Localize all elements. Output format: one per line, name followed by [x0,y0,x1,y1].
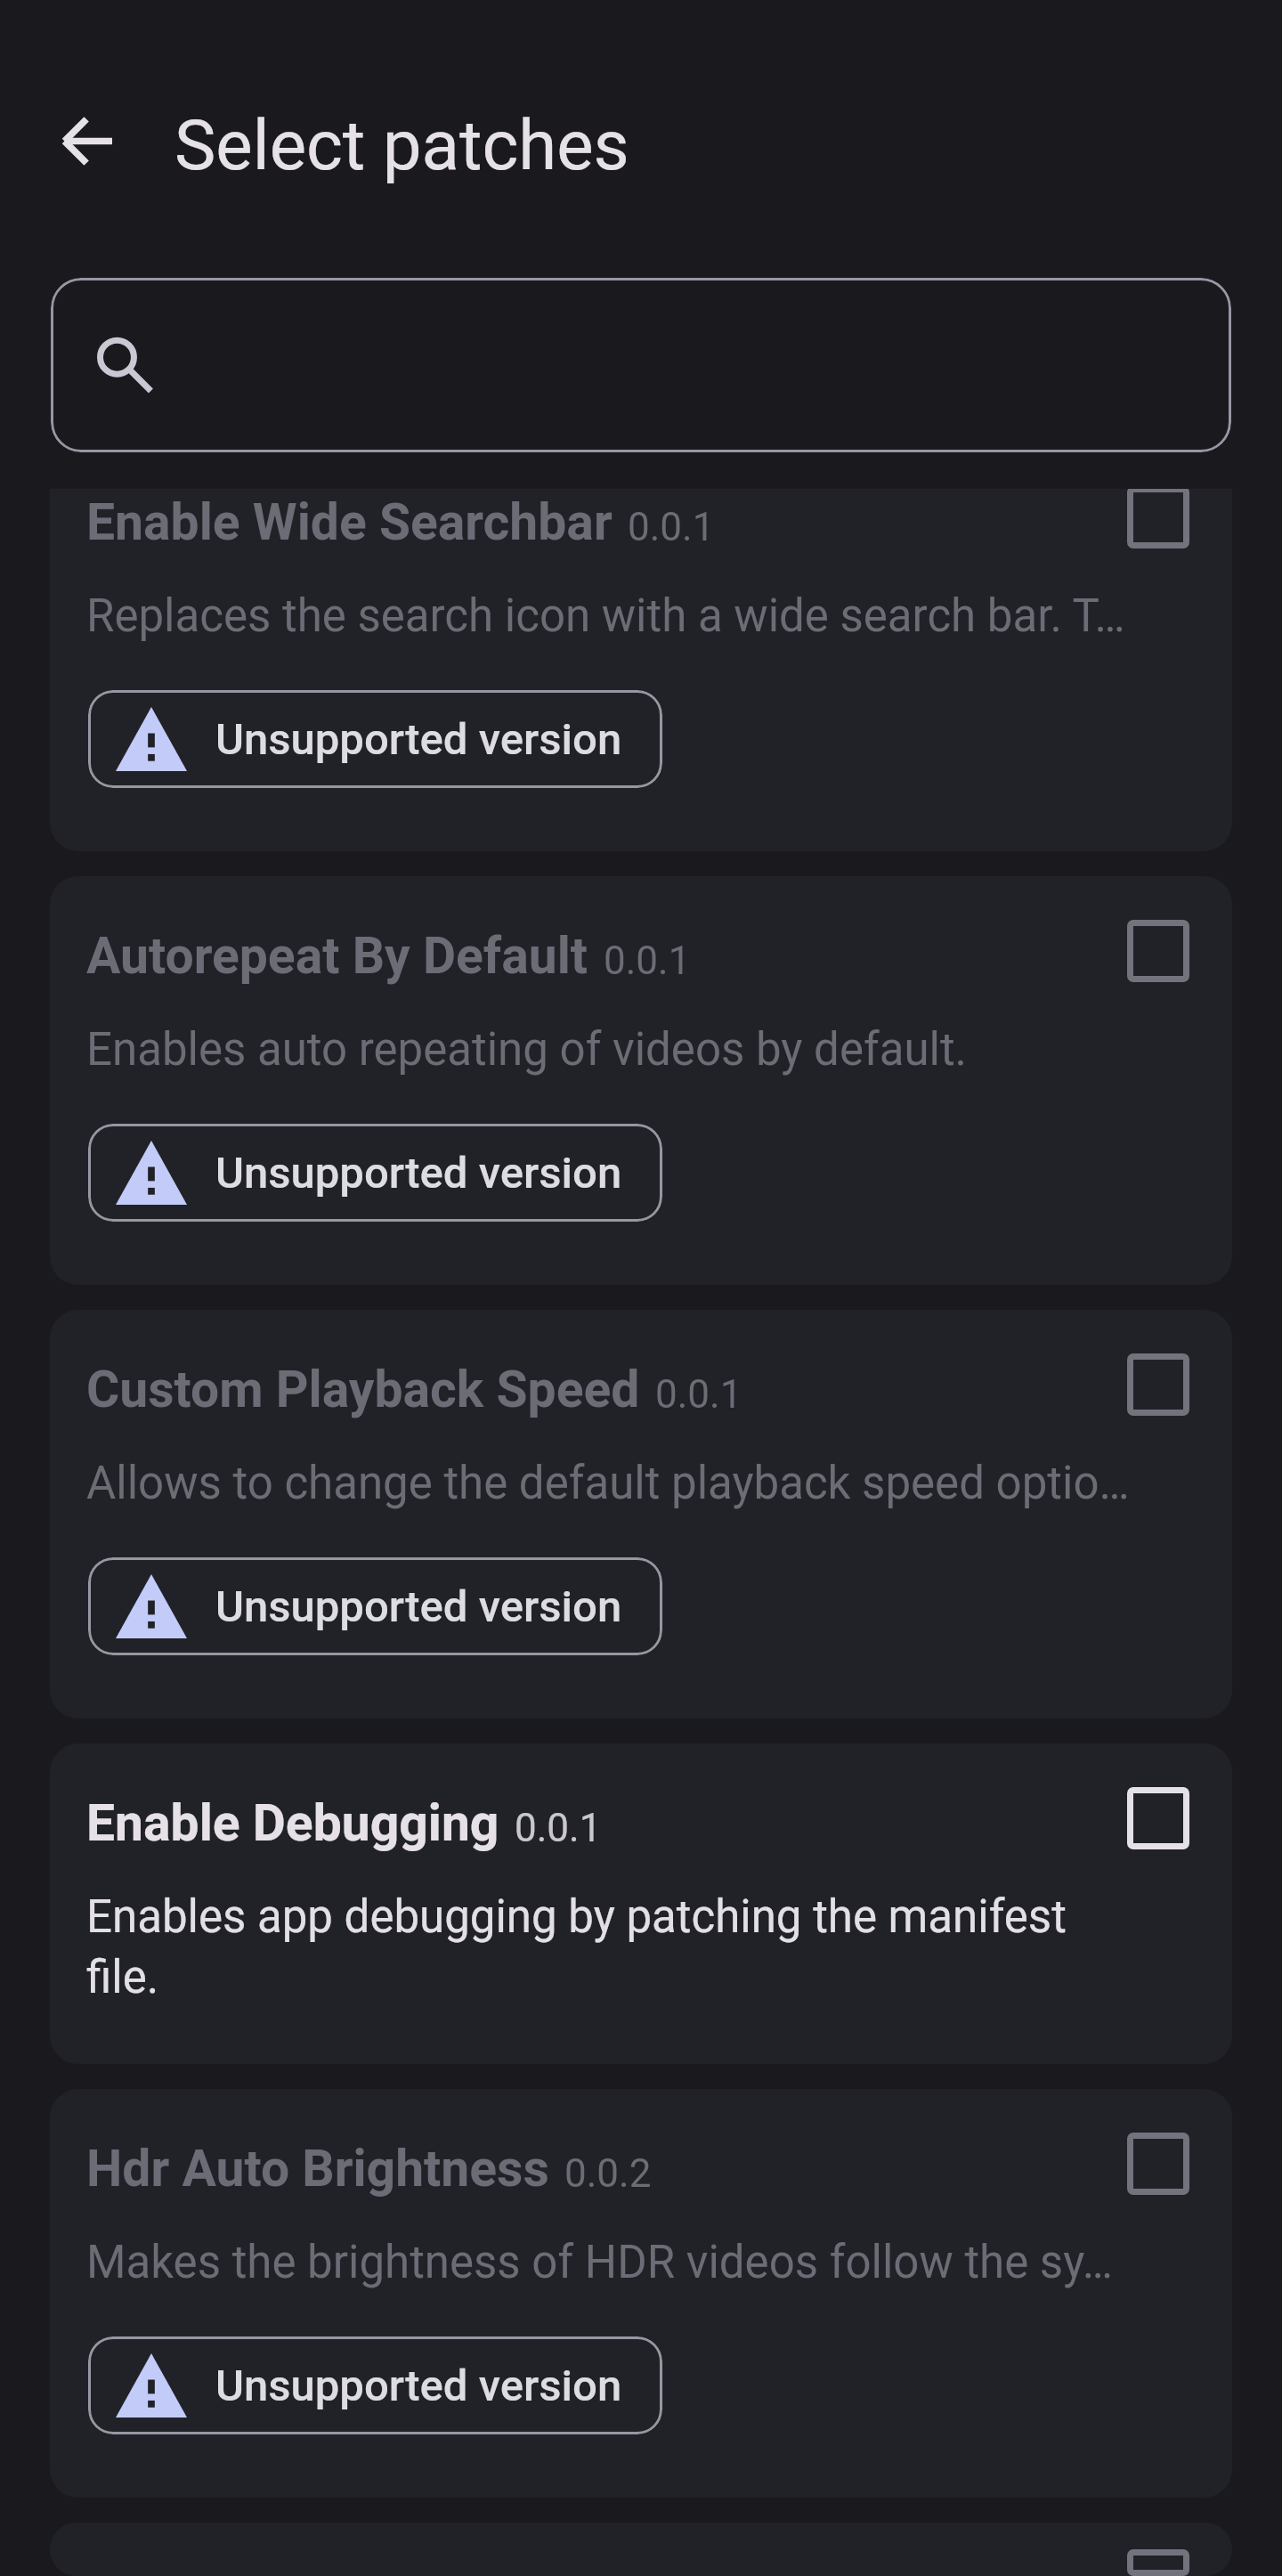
staticText: Hdr Auto Brightness [86,2139,549,2198]
staticText: 0.0.1 [655,1371,742,1418]
staticText: Enable Wide Searchbar [86,492,613,552]
staticText: 0.0.1 [515,1805,602,1851]
button[interactable]: Toggle patch [1110,489,1206,565]
button[interactable]: Back [39,93,134,188]
staticText: Makes the brightness of HDR videos follo… [86,2236,1113,2289]
button[interactable]: Toggle patch [1110,903,1206,999]
staticText: Unsupported version [215,1581,622,1632]
staticText: Enables auto repeating of videos by defa… [86,1023,968,1077]
staticText: 0.0.1 [604,938,691,984]
button[interactable]: Unsupported version [88,690,662,788]
staticText: Unsupported version [215,1148,622,1199]
staticText: Autorepeat By Default [86,926,588,986]
button[interactable]: Toggle patch [50,2523,1232,2576]
staticText: Replaces the search icon with a wide sea… [86,589,1125,643]
button[interactable]: Toggle patch [50,876,1232,1285]
staticText: 0.0.2 [564,2150,652,2197]
staticText: Allows to change the default playback sp… [86,1457,1130,1510]
staticText: Select patches [174,105,629,186]
staticText: Custom Playback Speed [86,1360,640,1419]
staticText: Unsupported version [215,714,622,765]
button[interactable]: Toggle patch [50,2089,1232,2498]
staticText: Unsupported version [215,2361,622,2411]
button[interactable]: Search patches [51,278,1231,452]
button[interactable]: Toggle patch [1110,2549,1206,2576]
button[interactable]: Toggle patch [50,1310,1232,1719]
button[interactable]: Toggle patch [1110,1770,1206,1866]
staticText: 0.0.1 [628,504,715,550]
button[interactable]: Toggle patch [1110,1337,1206,1433]
button[interactable]: Unsupported version [88,2336,662,2434]
staticText: Enables app debugging by patching the ma… [86,1890,1136,2003]
button[interactable]: Unsupported version [88,1557,662,1655]
staticText: Enable Debugging [86,1793,499,1853]
button[interactable]: Toggle patch [1110,2116,1206,2212]
button[interactable]: Toggle patch [50,489,1232,851]
button[interactable]: Toggle patch [50,1743,1232,2064]
button[interactable]: Unsupported version [88,1124,662,1222]
